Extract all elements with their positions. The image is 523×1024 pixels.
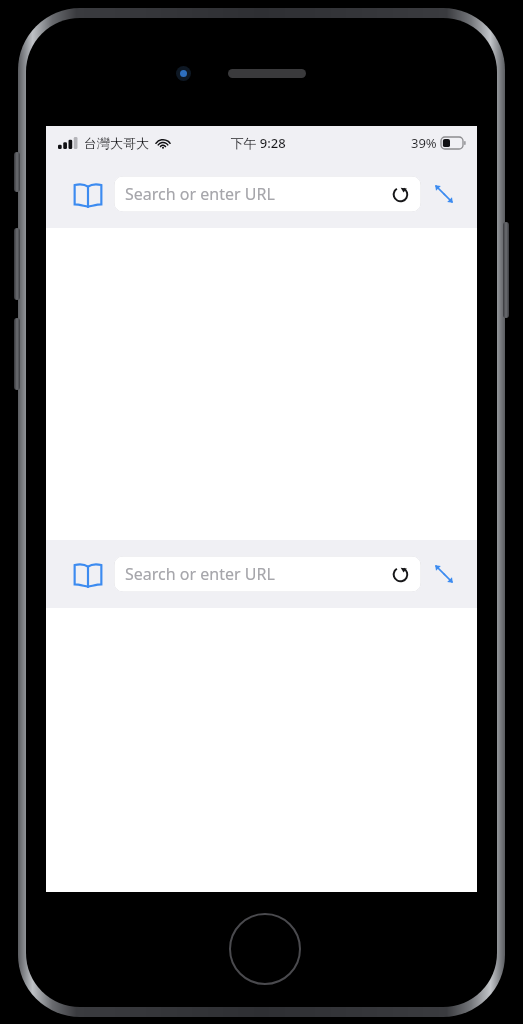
button[interactable]: Reload — [385, 559, 415, 589]
button[interactable]: Expand — [425, 555, 463, 593]
staticText: 台灣大哥大 — [84, 135, 149, 151]
staticText: 下午 9:28 — [230, 134, 286, 152]
staticText: Search or enter URL — [125, 183, 275, 205]
button[interactable]: Search or enter URL — [114, 176, 421, 212]
button[interactable]: Reload — [385, 179, 415, 209]
staticText: Search or enter URL — [125, 563, 275, 585]
button[interactable]: Home — [229, 913, 301, 985]
staticText: 39% — [411, 134, 437, 152]
button[interactable]: Search or enter URL — [114, 556, 421, 592]
button[interactable]: Bookmarks — [68, 554, 108, 594]
button[interactable]: Bookmarks — [68, 174, 108, 214]
button[interactable]: Expand — [425, 175, 463, 213]
